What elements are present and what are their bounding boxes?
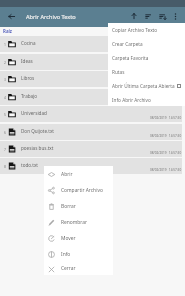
staticText: Renombrar xyxy=(61,219,88,226)
staticText: 7 xyxy=(4,147,6,152)
staticText: Raíz xyxy=(3,28,12,34)
staticText: 3 xyxy=(4,77,6,82)
staticText: Rutas xyxy=(112,69,125,75)
staticText: Borrar xyxy=(61,203,76,210)
button[interactable]: 5 xyxy=(0,106,182,122)
staticText: 6 xyxy=(4,130,6,135)
staticText: 5 xyxy=(4,112,6,117)
button[interactable]: Copiar Archivo Texto xyxy=(108,23,185,37)
staticText: 08/02/2019 14:57:30 xyxy=(150,134,182,138)
staticText: Libros xyxy=(21,75,35,81)
button[interactable]: Info xyxy=(44,246,113,262)
button[interactable]: Carpeta Favorita xyxy=(108,51,185,65)
staticText: Trabajo xyxy=(21,93,38,99)
button[interactable]: Sort xyxy=(142,10,154,22)
staticText: 4 xyxy=(4,95,6,100)
button[interactable]: 7 xyxy=(0,141,182,157)
button[interactable]: 2 xyxy=(0,54,182,70)
staticText: Cocina xyxy=(21,40,36,46)
staticText: Info xyxy=(61,251,71,258)
staticText: Abrir Última Carpeta Abierta xyxy=(112,83,175,89)
staticText: Mover xyxy=(61,235,76,242)
button[interactable]: 3 xyxy=(0,71,182,87)
staticText: poesias bus.txt xyxy=(21,145,54,151)
button[interactable]: Back xyxy=(5,10,17,22)
button[interactable]: Cerrar xyxy=(44,262,113,275)
staticText: Carpeta Favorita xyxy=(112,55,149,61)
staticText: 08/02/2019 14:57:30 xyxy=(150,168,182,172)
staticText: 08/02/2019 14:57:30 xyxy=(150,99,182,103)
staticText: Abrir xyxy=(61,171,73,178)
staticText: Copiar Archivo Texto xyxy=(112,27,158,33)
staticText: Don Quijote.txt xyxy=(21,128,54,134)
staticText: 2 xyxy=(4,60,6,65)
button[interactable]: 8 xyxy=(0,158,182,174)
staticText: Info Abrir Archivo xyxy=(112,97,151,103)
button[interactable]: 1 xyxy=(0,36,182,52)
button[interactable]: Abrir Última Carpeta Abierta xyxy=(108,79,185,93)
button[interactable]: Borrar xyxy=(44,198,113,214)
staticText: Abrir Archivo Texto xyxy=(26,13,76,21)
staticText: Compartir Archivo xyxy=(61,187,103,194)
button[interactable]: Compartir Archivo xyxy=(44,182,113,198)
button[interactable]: More options xyxy=(169,10,181,22)
button[interactable]: Sort order xyxy=(156,10,168,22)
button[interactable]: Info Abrir Archivo xyxy=(108,93,185,106)
staticText: 08/02/2019 14:57:30 xyxy=(150,81,182,85)
button[interactable]: Upload xyxy=(128,10,140,22)
staticText: Universidad xyxy=(21,110,47,116)
button[interactable]: 4 xyxy=(0,89,182,105)
staticText: Cerrar xyxy=(61,265,76,272)
staticText: 1 xyxy=(4,42,6,47)
button[interactable]: Abrir xyxy=(44,166,113,182)
button[interactable]: 6 xyxy=(0,124,182,140)
staticText: 08/02/2019 14:57:30 xyxy=(150,151,182,155)
button[interactable]: Renombrar xyxy=(44,214,113,230)
button[interactable]: Mover xyxy=(44,230,113,246)
staticText: 08/02/2019 14:57:30 xyxy=(150,116,182,120)
staticText: Ideas xyxy=(21,58,33,64)
staticText: todo.txt xyxy=(21,162,39,168)
button[interactable]: Rutas xyxy=(108,65,185,79)
button[interactable]: Crear Carpeta xyxy=(108,37,185,51)
staticText: 8 xyxy=(4,164,6,169)
staticText: Crear Carpeta xyxy=(112,41,143,47)
